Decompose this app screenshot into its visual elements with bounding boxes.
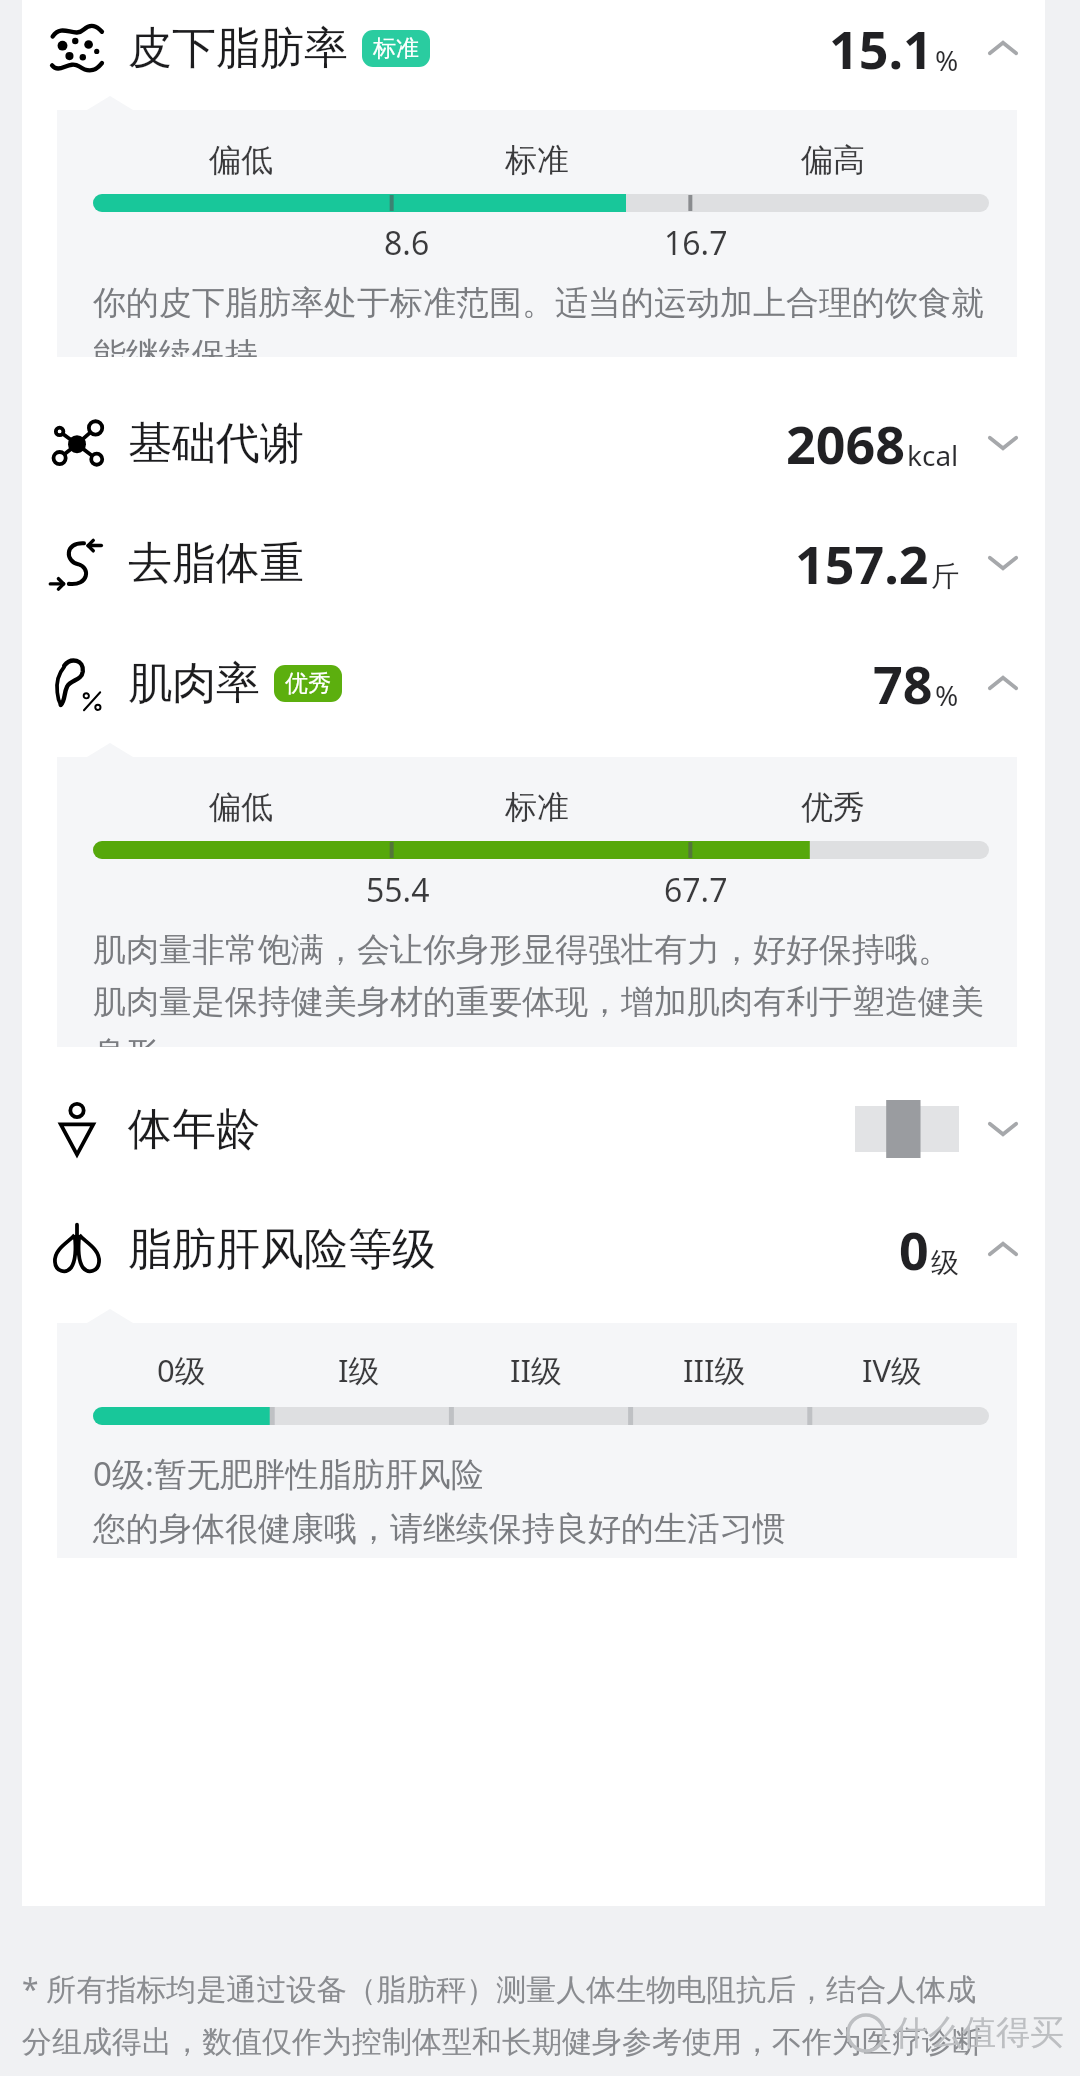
button[interactable]: 基础代谢 — [22, 383, 1045, 503]
staticText: 斤 — [931, 559, 959, 594]
staticText: 什么值得买 — [894, 2011, 1064, 2054]
staticText: kcal — [907, 436, 959, 474]
staticText: 55.4 — [366, 868, 430, 912]
staticText: 15.1 — [829, 13, 933, 84]
staticText: 脂肪肝风险等级 — [128, 1222, 436, 1277]
other: Collapse — [981, 26, 1025, 70]
staticText: 偏高 — [801, 140, 865, 180]
staticText: 标准 — [373, 34, 419, 63]
other: Collapse — [981, 661, 1025, 705]
staticText: * 所有指标均是通过设备（脂肪秤）测量人体生物电阻抗后，结合人体成 分组成得出，… — [22, 1968, 982, 2076]
staticText: 体年龄 — [128, 1102, 260, 1157]
staticText: 偏低 — [209, 787, 273, 827]
staticText: 16.7 — [664, 221, 728, 265]
button[interactable]: 皮下脂肪率 — [22, 0, 1045, 96]
staticText: 肌肉率 — [128, 656, 260, 711]
staticText: IV级 — [862, 1349, 923, 1391]
staticText: 78 — [873, 648, 933, 719]
staticText: 0级:暂无肥胖性脂肪肝风险 您的身体很健康哦，请继续保持良好的生活习惯 — [93, 1451, 786, 1550]
button[interactable]: 脂肪肝风险等级 — [22, 1189, 1045, 1309]
other: Expand — [981, 541, 1025, 585]
staticText: 0 — [899, 1214, 929, 1285]
staticText: 级 — [931, 1245, 959, 1280]
staticText: 肌肉量非常饱满，会让你身形显得强壮有力，好好保持哦。 肌肉量是保持健美身材的重要… — [93, 929, 984, 1047]
other: Collapse — [981, 1227, 1025, 1271]
staticText: 优秀 — [285, 669, 331, 698]
staticText: 2068 — [786, 408, 905, 479]
staticText: 去脂体重 — [128, 536, 304, 591]
staticText: 基础代谢 — [128, 416, 304, 471]
staticText: 8.6 — [384, 221, 430, 265]
staticText: 标准 — [505, 140, 569, 180]
button[interactable]: 肌肉率 — [22, 623, 1045, 743]
staticText: 标准 — [505, 787, 569, 827]
staticText: % — [935, 41, 959, 79]
staticText: % — [935, 676, 959, 714]
staticText: 67.7 — [664, 868, 728, 912]
staticText: 157.2 — [795, 528, 929, 599]
button[interactable]: 去脂体重 — [22, 503, 1045, 623]
staticText: 0级 — [157, 1349, 206, 1391]
staticText: II级 — [510, 1349, 563, 1391]
staticText: 你的皮下脂肪率处于标准范围。适当的运动加上合理的饮食就 能继续保持。 — [93, 282, 984, 357]
staticText: III级 — [683, 1349, 746, 1391]
other: Expand — [981, 1107, 1025, 1151]
staticText: I级 — [338, 1349, 380, 1391]
button[interactable]: 体年龄 — [22, 1069, 1045, 1189]
staticText: 偏低 — [209, 140, 273, 180]
staticText: 优秀 — [801, 787, 865, 827]
staticText: 皮下脂肪率 — [128, 21, 348, 76]
other: Expand — [981, 421, 1025, 465]
